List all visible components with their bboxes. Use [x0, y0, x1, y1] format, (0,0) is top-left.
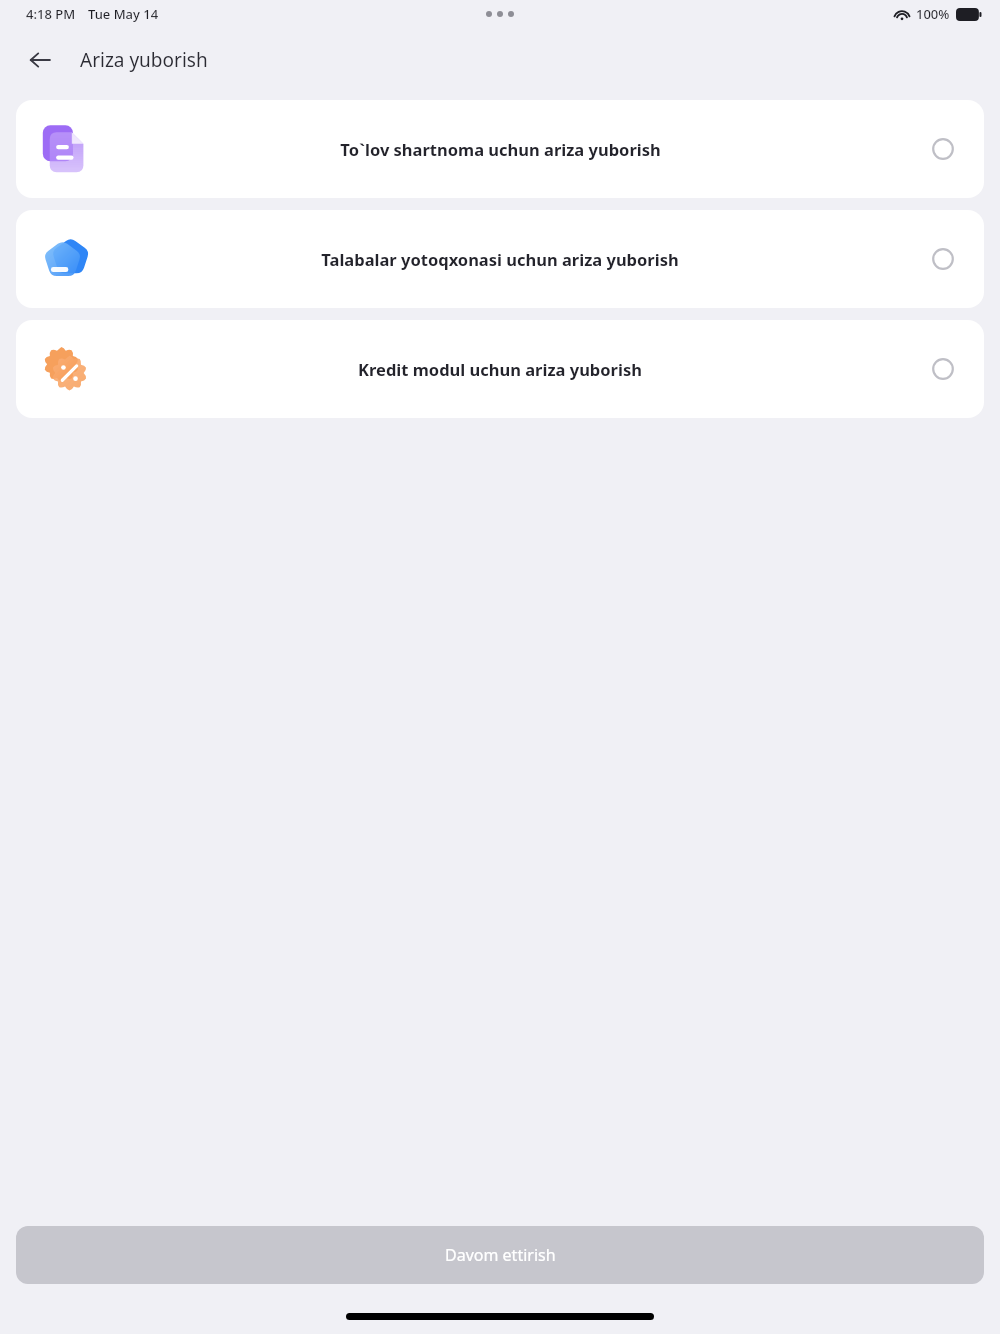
button[interactable]: Kredit modul uchun ariza yuborish — [16, 320, 984, 418]
staticText: To`lov shartnoma uchun ariza yuborish — [340, 138, 661, 160]
staticText: Ariza yuborish — [80, 47, 208, 73]
staticText: Tue May 14 — [88, 5, 159, 23]
staticText: Davom ettirish — [445, 1244, 556, 1266]
button[interactable]: Talabalar yotoqxonasi uchun ariza yubori… — [16, 210, 984, 308]
staticText: 4:18 PM — [26, 5, 76, 23]
button[interactable]: Back — [16, 36, 64, 84]
staticText: Kredit modul uchun ariza yuborish — [358, 358, 642, 380]
button[interactable]: Davom ettirish — [16, 1226, 984, 1284]
button[interactable]: To`lov shartnoma uchun ariza yuborish — [16, 100, 984, 198]
staticText: 100% — [916, 5, 950, 23]
staticText: Talabalar yotoqxonasi uchun ariza yubori… — [321, 248, 679, 270]
